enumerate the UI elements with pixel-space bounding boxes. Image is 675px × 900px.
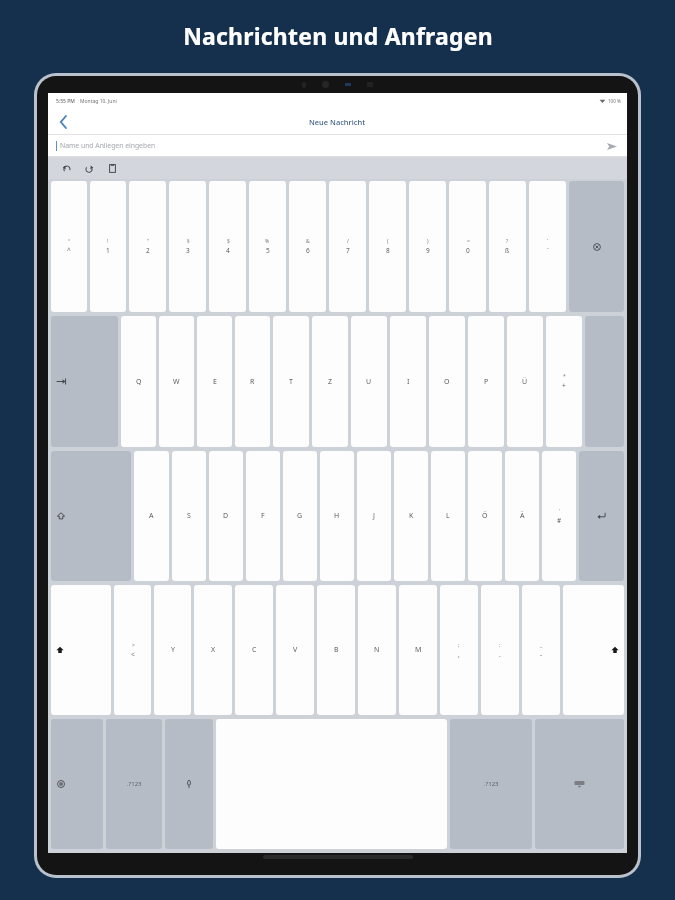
staticText: D [223,511,229,521]
staticText: $ [227,238,230,245]
staticText: B [334,645,339,655]
button[interactable]: A [134,451,169,581]
staticText: H [334,511,340,521]
button[interactable]: Taste [579,451,624,581]
button[interactable]: Shift [51,585,111,715]
button[interactable]: Q [121,316,156,447]
staticText: - [540,650,543,659]
button[interactable]: L [431,451,465,581]
staticText: § [187,238,190,245]
button[interactable]: Taste [569,181,624,312]
button[interactable]: O [429,316,465,447]
button[interactable]: R [235,316,270,447]
button[interactable]: Taste [535,719,624,849]
button[interactable]: X [194,585,232,715]
button[interactable]: § [169,181,206,312]
staticText: 100 % [608,98,621,104]
button[interactable]: Z [312,316,348,447]
button[interactable]: & [289,181,326,312]
button[interactable]: Ä [505,451,539,581]
button[interactable]: K [394,451,428,581]
button[interactable]: Taste [165,719,213,849]
staticText: G [297,511,303,521]
staticText: M [415,645,422,655]
button[interactable]: U [351,316,387,447]
button[interactable]: Einfügen [104,160,120,176]
button[interactable]: M [399,585,437,715]
button[interactable]: E [197,316,232,447]
button[interactable]: Wiederholen [81,160,97,176]
button[interactable]: Senden [603,137,621,155]
button[interactable]: P [468,316,504,447]
button[interactable]: * [546,316,582,447]
button[interactable]: Zurück [52,111,74,133]
staticText: W [173,377,180,387]
button[interactable]: Taste [51,451,131,581]
button[interactable]: J [357,451,391,581]
button[interactable]: Y [154,585,191,715]
button[interactable]: Ö [468,451,502,581]
button[interactable]: Shift [563,585,624,715]
button[interactable]: Ü [507,316,543,447]
staticText: Nachrichten und Anfragen [183,20,493,51]
staticText: ' [559,508,561,515]
button[interactable]: ) [409,181,446,312]
staticText: . [499,650,501,659]
button[interactable]: B [317,585,355,715]
button[interactable]: D [209,451,243,581]
button[interactable]: ( [369,181,406,312]
staticText: 0 [466,246,470,255]
button[interactable]: N [358,585,396,715]
staticText: U [366,377,372,387]
staticText: 5:55 PM [56,98,75,105]
button[interactable]: ! [90,181,126,312]
button[interactable]: V [276,585,314,715]
button[interactable]: % [249,181,286,312]
button[interactable]: $ [209,181,246,312]
staticText: * [563,373,566,380]
button[interactable]: C [235,585,273,715]
staticText: O [444,377,450,387]
staticText: _ [540,642,543,649]
button[interactable]: F [246,451,280,581]
staticText: / [347,238,349,245]
button[interactable]: Name und Anliegen eingeben [48,135,627,156]
staticText: ^ [67,246,71,255]
staticText: + [562,381,566,390]
button[interactable]: W [159,316,194,447]
button[interactable]: ° [51,181,87,312]
button[interactable]: Rückgängig [58,160,74,176]
button[interactable]: / [329,181,366,312]
staticText: R [250,377,255,387]
button[interactable]: > [114,585,151,715]
button[interactable]: Taste [51,719,103,849]
button[interactable]: = [449,181,486,312]
button[interactable]: I [390,316,426,447]
staticText: ° [68,238,71,245]
staticText: # [557,516,562,525]
button[interactable]: " [129,181,166,312]
staticText: Ö [482,511,488,521]
button[interactable]: H [320,451,354,581]
staticText: ß [505,246,510,255]
button[interactable]: Taste [51,316,118,447]
button[interactable]: G [283,451,317,581]
staticText: Ü [522,377,528,387]
staticText: Z [328,377,333,387]
staticText: & [306,238,310,245]
button[interactable]: ' [542,451,576,581]
staticText: Montag 10. Juni [80,98,117,105]
button[interactable]: T [273,316,309,447]
staticText: 6 [306,246,310,255]
button[interactable]: S [172,451,206,581]
staticText: N [374,645,380,655]
button[interactable]: ? [489,181,526,312]
